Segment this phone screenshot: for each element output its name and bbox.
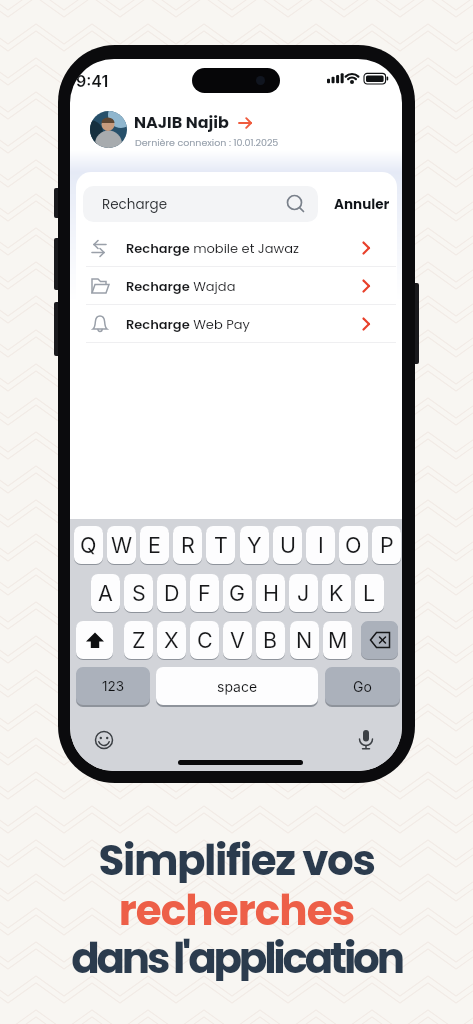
button[interactable]: space bbox=[156, 667, 318, 705]
button[interactable]: H bbox=[256, 574, 285, 612]
button[interactable]: Q bbox=[74, 526, 103, 564]
staticText: Z bbox=[132, 627, 146, 653]
staticText: V bbox=[230, 627, 245, 653]
button[interactable]: U bbox=[273, 526, 302, 564]
staticText: I bbox=[318, 532, 324, 558]
staticText: J bbox=[297, 580, 310, 606]
staticText: H bbox=[263, 580, 279, 606]
button[interactable]: V bbox=[223, 621, 252, 659]
staticText: U bbox=[280, 532, 296, 558]
staticText: NAJIB Najib bbox=[134, 111, 229, 133]
staticText: Recharge mobile et Jawaz bbox=[126, 239, 299, 257]
staticText: D bbox=[164, 580, 180, 606]
staticText: Recharge bbox=[102, 195, 168, 214]
staticText: recherches bbox=[0, 881, 473, 933]
staticText: S bbox=[132, 580, 146, 606]
staticText: G bbox=[229, 580, 246, 606]
button[interactable]: C bbox=[190, 621, 219, 659]
button[interactable]: S bbox=[124, 574, 153, 612]
staticText: space bbox=[217, 678, 258, 695]
staticText: E bbox=[148, 532, 161, 558]
button[interactable]: Z bbox=[124, 621, 153, 659]
staticText: X bbox=[164, 627, 179, 653]
staticText: A bbox=[98, 580, 113, 606]
button[interactable]: Y bbox=[240, 526, 269, 564]
staticText: Simplifiez vos bbox=[0, 831, 473, 883]
button[interactable]: N bbox=[290, 621, 319, 659]
staticText: dans l'application bbox=[0, 929, 473, 981]
staticText: K bbox=[329, 580, 344, 606]
button[interactable]: X bbox=[157, 621, 186, 659]
button[interactable]: 123 bbox=[76, 667, 150, 705]
button[interactable]: A bbox=[91, 574, 120, 612]
staticText: Q bbox=[80, 532, 97, 558]
button[interactable]: T bbox=[206, 526, 235, 564]
button[interactable]: I bbox=[306, 526, 335, 564]
button[interactable]: Recharge mobile et Jawaz bbox=[80, 229, 392, 267]
button[interactable]: R bbox=[173, 526, 202, 564]
staticText: 123 bbox=[102, 678, 125, 694]
staticText: 9:41 bbox=[76, 71, 109, 90]
button[interactable]: J bbox=[289, 574, 318, 612]
staticText: Recharge Web Pay bbox=[126, 315, 250, 333]
staticText: Y bbox=[247, 532, 262, 558]
button[interactable]: Go bbox=[325, 667, 400, 705]
staticText: P bbox=[380, 532, 394, 558]
staticText: F bbox=[198, 580, 211, 606]
button[interactable]: Annuler bbox=[332, 186, 392, 222]
staticText: W bbox=[111, 532, 133, 558]
button[interactable]: P bbox=[372, 526, 401, 564]
staticText: B bbox=[263, 627, 278, 653]
staticText: Recharge Wajda bbox=[126, 277, 236, 295]
button[interactable]: Recharge bbox=[83, 186, 318, 222]
button[interactable]: K bbox=[322, 574, 351, 612]
button[interactable]: W bbox=[107, 526, 136, 564]
button[interactable]: G bbox=[223, 574, 252, 612]
button[interactable] bbox=[90, 111, 127, 148]
staticText: T bbox=[214, 532, 228, 558]
button[interactable] bbox=[361, 621, 398, 659]
staticText: Dernière connexion : 10.01.2025 bbox=[135, 136, 279, 149]
staticText: C bbox=[197, 627, 213, 653]
staticText: O bbox=[345, 532, 362, 558]
staticText: Annuler bbox=[334, 195, 390, 214]
button[interactable]: M bbox=[323, 621, 352, 659]
button[interactable]: Recharge Wajda bbox=[80, 267, 392, 305]
button[interactable]: L bbox=[355, 574, 384, 612]
button[interactable]: E bbox=[140, 526, 169, 564]
button[interactable]: B bbox=[256, 621, 285, 659]
button[interactable] bbox=[76, 621, 113, 659]
staticText: R bbox=[181, 532, 195, 558]
button[interactable]: Recharge Web Pay bbox=[80, 305, 392, 343]
button[interactable] bbox=[355, 729, 377, 751]
button[interactable]: D bbox=[157, 574, 186, 612]
staticText: M bbox=[328, 627, 348, 653]
button[interactable] bbox=[94, 730, 114, 750]
button[interactable]: F bbox=[190, 574, 219, 612]
staticText: N bbox=[296, 627, 313, 653]
button[interactable]: O bbox=[339, 526, 368, 564]
staticText: L bbox=[363, 580, 376, 606]
staticText: Go bbox=[353, 678, 372, 695]
